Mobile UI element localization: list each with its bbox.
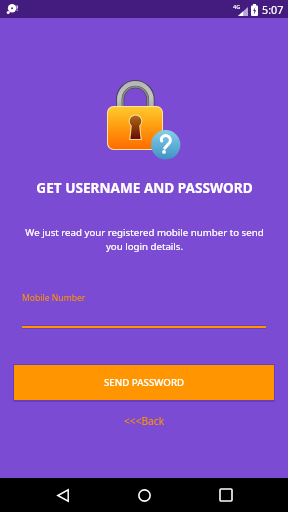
staticText: GET USERNAME AND PASSWORD — [36, 178, 253, 197]
button[interactable]: <<<Back — [114, 411, 175, 431]
button[interactable]: Recent apps — [204, 478, 248, 512]
staticText: <<<Back — [124, 414, 165, 428]
staticText: 4G — [233, 3, 241, 10]
staticText: Mobile Number — [22, 292, 86, 304]
staticText: 5:07 — [262, 2, 284, 17]
button[interactable]: SEND PASSWORD — [14, 365, 274, 400]
button[interactable]: Back — [41, 478, 85, 512]
staticText: SEND PASSWORD — [104, 376, 185, 389]
button[interactable]: Home — [122, 478, 166, 512]
staticText: We just read your registered mobile numb… — [25, 226, 264, 253]
